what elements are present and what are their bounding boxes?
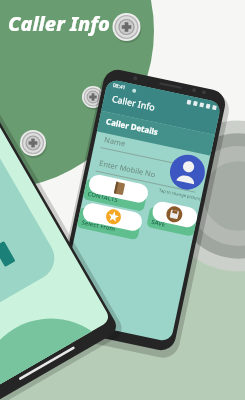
button[interactable]: Caller Info app preview — [0, 0, 245, 400]
